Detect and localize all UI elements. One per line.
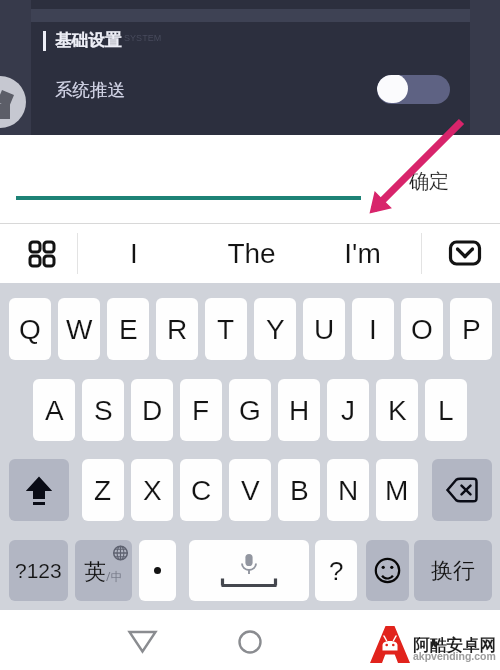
staticText: I'm <box>344 238 381 269</box>
staticText: L <box>438 395 454 426</box>
button[interactable]: P <box>450 298 492 360</box>
staticText: P <box>462 314 481 345</box>
button[interactable]: Back <box>122 612 164 654</box>
button[interactable]: Keyboard menu <box>18 234 66 274</box>
button[interactable]: U <box>303 298 345 360</box>
button[interactable]: 确定 <box>396 158 462 202</box>
staticText: E <box>119 314 138 345</box>
staticText: 阿酷安卓网 <box>413 635 496 656</box>
staticText: 换行 <box>431 557 475 585</box>
staticText: 系统推送 <box>55 79 125 101</box>
staticText: ? <box>329 556 344 585</box>
button[interactable]: V <box>229 459 271 521</box>
button[interactable]: I <box>352 298 394 360</box>
staticText: 确定 <box>409 169 449 194</box>
button[interactable]: O <box>401 298 443 360</box>
staticText: N <box>338 475 359 506</box>
button[interactable]: Period <box>139 540 176 601</box>
button[interactable]: L <box>425 379 467 441</box>
button[interactable]: T <box>205 298 247 360</box>
button[interactable]: J <box>327 379 369 441</box>
button[interactable]: 系统推送 <box>31 66 470 114</box>
staticText: I <box>130 238 138 269</box>
staticText: 基础设置 <box>55 30 121 51</box>
button[interactable]: K <box>376 379 418 441</box>
button[interactable]: R <box>156 298 198 360</box>
button[interactable]: Q <box>9 298 51 360</box>
button[interactable]: The <box>206 229 296 278</box>
button[interactable]: Z <box>82 459 124 521</box>
button[interactable]: Y <box>254 298 296 360</box>
staticText: D <box>142 395 163 426</box>
button[interactable]: F <box>180 379 222 441</box>
staticText: S <box>94 395 113 426</box>
button[interactable]: D <box>131 379 173 441</box>
staticText: J <box>341 395 355 426</box>
button[interactable]: G <box>229 379 271 441</box>
button[interactable]: Emoji <box>366 540 409 601</box>
button[interactable]: A <box>33 379 75 441</box>
button[interactable]: I <box>89 229 179 278</box>
staticText: C <box>191 475 212 506</box>
staticText: U <box>314 314 335 345</box>
staticText: K <box>388 395 407 426</box>
staticText: I <box>369 314 377 345</box>
staticText: The <box>227 238 276 269</box>
staticText: V <box>241 475 260 506</box>
button[interactable]: Shift <box>9 459 69 521</box>
button[interactable]: 系统推送 toggle <box>377 75 450 104</box>
staticText: 英 <box>84 558 106 586</box>
staticText: Z <box>94 475 112 506</box>
staticText: T <box>217 314 235 345</box>
staticText: akpvending.com <box>413 650 496 662</box>
button[interactable]: M <box>376 459 418 521</box>
button[interactable]: ?123 <box>9 540 68 601</box>
button[interactable]: X <box>131 459 173 521</box>
staticText: H <box>289 395 310 426</box>
button[interactable]: C <box>180 459 222 521</box>
button[interactable]: S <box>82 379 124 441</box>
staticText: F <box>192 395 210 426</box>
staticText: X <box>143 475 162 506</box>
button[interactable]: Backspace <box>432 459 492 521</box>
staticText: Q <box>19 314 41 345</box>
staticText: ?123 <box>15 559 62 582</box>
staticText: W <box>66 314 93 345</box>
button[interactable]: E <box>107 298 149 360</box>
staticText: A <box>45 395 64 426</box>
button[interactable]: H <box>278 379 320 441</box>
staticText: G <box>239 395 261 426</box>
button[interactable]: ? <box>315 540 357 601</box>
button[interactable]: W <box>58 298 100 360</box>
button[interactable]: B <box>278 459 320 521</box>
staticText: B <box>290 475 309 506</box>
button[interactable]: I'm <box>317 229 407 278</box>
button[interactable]: N <box>327 459 369 521</box>
button[interactable]: 换行 <box>414 540 492 601</box>
button[interactable]: 英 <box>75 540 132 601</box>
staticText: M <box>385 475 409 506</box>
button[interactable]: Home <box>229 612 271 654</box>
staticText: /中 <box>106 568 123 584</box>
staticText: Y <box>266 314 285 345</box>
button[interactable]: Hide keyboard <box>440 233 490 273</box>
staticText: R <box>167 314 188 345</box>
button[interactable]: Assistive touch <box>0 76 26 128</box>
staticText: O <box>411 314 433 345</box>
button[interactable]: Space <box>189 540 309 601</box>
staticText: SYSTEM <box>124 33 162 43</box>
